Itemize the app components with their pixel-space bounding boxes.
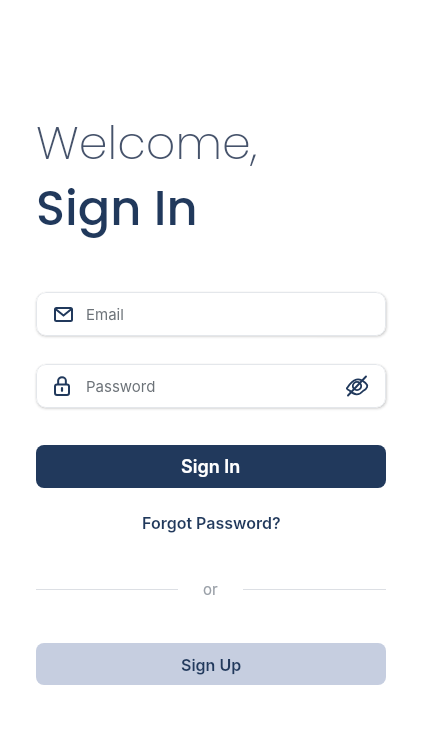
- staticText: Forgot Password?: [142, 513, 281, 532]
- button[interactable]: Sign In: [36, 445, 386, 488]
- staticText: Sign In: [36, 175, 198, 242]
- staticText: Welcome,: [36, 111, 258, 175]
- staticText: or: [203, 580, 218, 598]
- button[interactable]: Sign Up: [36, 643, 386, 685]
- staticText: Sign In: [181, 456, 241, 478]
- staticText: Password: [86, 377, 156, 395]
- staticText: Email: [86, 305, 124, 323]
- button[interactable]: Email: [36, 292, 386, 336]
- button[interactable]: Forgot Password?: [142, 513, 281, 532]
- button[interactable]: Password: [36, 364, 386, 408]
- staticText: Sign Up: [181, 655, 242, 674]
